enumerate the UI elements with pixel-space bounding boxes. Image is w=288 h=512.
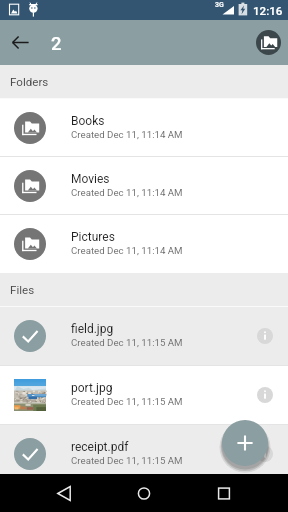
staticText: Pictures [71, 230, 115, 244]
staticText: Created Dec 11, 11:14 AM [71, 129, 183, 140]
button[interactable]: Info [257, 446, 273, 462]
staticText: Created Dec 11, 11:15 AM [71, 396, 183, 407]
button[interactable]: Home [126, 475, 162, 511]
staticText: 2 [51, 33, 62, 55]
button[interactable]: Add [222, 420, 268, 466]
button[interactable]: Movies [0, 157, 288, 215]
button[interactable]: Pictures [0, 215, 288, 273]
button[interactable]: Books [0, 99, 288, 157]
button[interactable]: Info [257, 328, 273, 344]
staticText: Created Dec 11, 11:14 AM [71, 245, 183, 256]
staticText: receipt.pdf [71, 440, 129, 454]
staticText: Created Dec 11, 11:15 AM [71, 337, 183, 348]
staticText: port.jpg [71, 381, 113, 395]
staticText: Folders [10, 75, 49, 89]
staticText: Books [71, 114, 105, 128]
button[interactable]: Back [0, 22, 41, 63]
button[interactable]: Info [257, 387, 273, 403]
staticText: field.jpg [71, 322, 114, 336]
button[interactable]: field.jpg [0, 307, 288, 366]
staticText: 3G [215, 1, 224, 9]
button[interactable]: Back [46, 475, 82, 511]
staticText: Files [10, 283, 35, 297]
staticText: Movies [71, 172, 110, 186]
button[interactable]: port.jpg [0, 366, 288, 425]
button[interactable]: Gallery [256, 30, 281, 55]
button[interactable]: receipt.pdf [0, 425, 288, 484]
staticText: Created Dec 11, 11:15 AM [71, 455, 183, 466]
button[interactable]: Recents [206, 475, 242, 511]
staticText: Created Dec 11, 11:14 AM [71, 187, 183, 198]
staticText: 12:16 [253, 4, 283, 18]
